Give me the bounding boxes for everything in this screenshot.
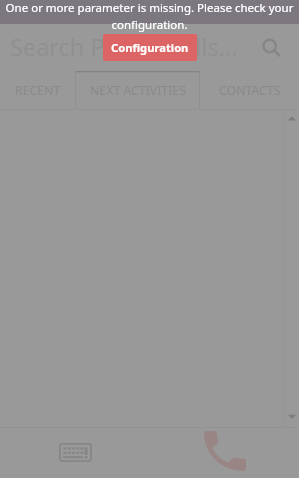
staticText: NEXT ACTIVITIES xyxy=(90,82,186,99)
button[interactable]: NEXT ACTIVITIES xyxy=(75,71,200,109)
button[interactable]: Call xyxy=(200,431,249,471)
button[interactable]: Dialpad xyxy=(50,434,100,470)
staticText: One or more parameter is missing. Please… xyxy=(3,0,296,32)
staticText: RECENT xyxy=(15,82,61,99)
button[interactable]: Search xyxy=(256,32,284,60)
staticText: CONTACTS xyxy=(219,82,281,99)
staticText: Search Phone Calls... xyxy=(10,31,238,63)
button[interactable]: Configuration xyxy=(103,34,197,61)
staticText: Configuration xyxy=(111,40,189,55)
